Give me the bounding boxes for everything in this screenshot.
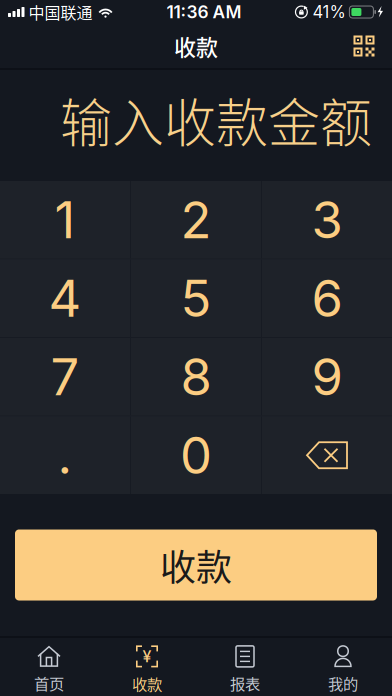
staticText: 3 — [311, 189, 342, 250]
button[interactable] — [262, 416, 392, 494]
staticText: 41% — [312, 2, 345, 22]
staticText: 7 — [50, 346, 79, 407]
staticText: 输入收款金额 — [60, 82, 372, 157]
button[interactable]: ¥ — [98, 638, 196, 696]
button[interactable]: 报表 — [196, 638, 294, 696]
button[interactable]: 9 — [262, 338, 392, 415]
button[interactable]: 6 — [262, 259, 392, 337]
staticText: 收款 — [132, 672, 162, 695]
staticText: 收款 — [160, 539, 232, 591]
staticText: 1 — [54, 189, 75, 250]
button[interactable]: 7 — [0, 338, 130, 415]
staticText: 4 — [48, 268, 81, 329]
button[interactable]: 我的 — [294, 638, 392, 696]
staticText: 5 — [180, 268, 211, 329]
staticText: 我的 — [328, 672, 358, 694]
button[interactable]: 5 — [131, 259, 261, 337]
button[interactable]: 8 — [131, 338, 261, 415]
staticText: 8 — [180, 346, 211, 407]
button[interactable]: 1 — [0, 181, 130, 258]
staticText: 收款 — [174, 30, 218, 62]
button[interactable]: 扫码 — [342, 24, 386, 68]
button[interactable]: 3 — [262, 181, 392, 258]
staticText: 首页 — [34, 672, 64, 694]
button[interactable]: 0 — [131, 416, 261, 494]
button[interactable]: 4 — [0, 259, 130, 337]
staticText: 中国联通 — [28, 0, 92, 24]
button[interactable]: 收款 — [0, 529, 392, 600]
staticText: ¥ — [142, 647, 151, 666]
staticText: 6 — [311, 268, 342, 329]
button[interactable]: 2 — [131, 181, 261, 258]
staticText: 0 — [180, 425, 212, 486]
button[interactable]: . — [0, 416, 130, 494]
staticText: 2 — [180, 189, 211, 250]
button[interactable]: 首页 — [0, 638, 98, 696]
staticText: 报表 — [230, 672, 260, 694]
staticText: 9 — [311, 346, 342, 407]
staticText: . — [57, 425, 72, 486]
staticText: 11:36 AM — [166, 1, 241, 22]
